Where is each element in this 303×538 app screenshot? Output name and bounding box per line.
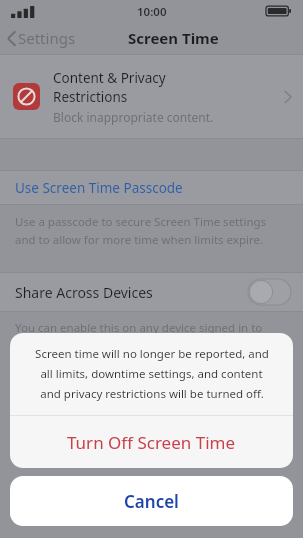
- staticText: Restrictions: [53, 88, 128, 106]
- button[interactable]: Share Across Devices toggle, off: [248, 279, 291, 305]
- staticText: Turn Off Screen Time: [67, 431, 236, 454]
- button[interactable]: Turn Off Screen Time: [10, 416, 293, 468]
- button[interactable]: Cancel: [10, 476, 293, 526]
- button[interactable]: Settings: [0, 25, 82, 51]
- staticText: Use a passcode to secure Screen Time set…: [15, 214, 267, 230]
- staticText: You can enable this on any device signed…: [15, 320, 263, 336]
- staticText: Screen time will no longer be reported, …: [35, 346, 269, 362]
- staticText: Content & Privacy: [53, 69, 166, 87]
- button[interactable]: Content & Privacy: [0, 55, 303, 138]
- staticText: all limits, downtime settings, and conte…: [40, 366, 263, 382]
- staticText: Use Screen Time Passcode: [15, 179, 183, 197]
- staticText: and privacy restrictions will be turned …: [40, 386, 264, 402]
- staticText: and to allow for more time when limits e…: [15, 232, 264, 248]
- staticText: Screen Time: [128, 28, 219, 48]
- staticText: Cancel: [124, 490, 179, 513]
- staticText: Block inappropriate content.: [53, 109, 214, 125]
- staticText: Share Across Devices: [15, 283, 153, 302]
- staticText: 10:00: [137, 4, 167, 20]
- button[interactable]: Share Across Devices: [0, 273, 303, 311]
- button[interactable]: Use Screen Time Passcode: [0, 171, 303, 204]
- other: Open Content & Privacy Restrictions: [284, 90, 292, 104]
- staticText: Settings: [18, 28, 76, 48]
